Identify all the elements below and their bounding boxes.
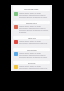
button[interactable]: Gold Star [13,61,50,64]
staticText: Lorem ipsum dolor sit amet consectetur a… [19,25,49,33]
staticText: Apps Size [28,37,36,39]
staticText: Monitoring Power [24,8,39,10]
button[interactable]: Monitoring Power [13,6,50,11]
staticText: Gold Star [28,62,36,64]
staticText: Lorem ipsum dolor sit amet consectetur a… [19,52,49,58]
staticText: Lorem ipsum dolor sit amet consectetur a… [19,65,49,69]
staticText: Lorem ipsum dolor sit amet consectetur a… [19,12,49,18]
staticText: Cache Right [27,49,37,51]
button[interactable]: Passive Place [13,21,50,24]
staticText: Passive Place [26,22,37,24]
staticText: Lorem ipsum dolor sit amet consectetur a… [19,40,49,44]
button[interactable]: Cache Right [13,48,50,51]
button[interactable]: Apps Size [13,36,50,39]
